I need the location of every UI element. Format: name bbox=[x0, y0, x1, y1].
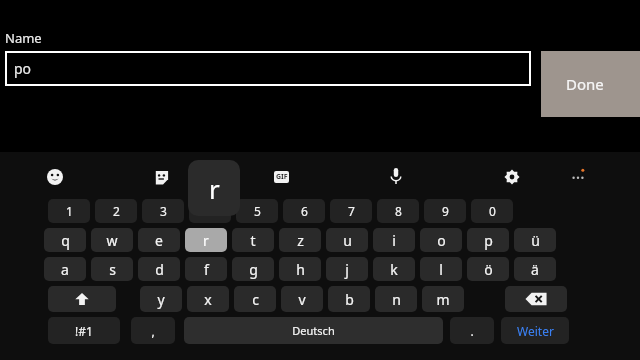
button[interactable]: w bbox=[91, 228, 133, 252]
button[interactable]: More options bbox=[565, 163, 591, 189]
staticText: GIF bbox=[276, 172, 288, 182]
staticText: l bbox=[439, 260, 443, 279]
button[interactable]: z bbox=[279, 228, 321, 252]
staticText: 0 bbox=[489, 203, 496, 219]
button[interactable]: g bbox=[232, 257, 274, 281]
button[interactable]: Weiter bbox=[501, 317, 569, 344]
button[interactable]: j bbox=[326, 257, 368, 281]
button[interactable]: p bbox=[467, 228, 509, 252]
staticText: z bbox=[297, 231, 304, 250]
button[interactable]: k bbox=[373, 257, 415, 281]
button[interactable]: Stickers bbox=[148, 164, 174, 190]
button[interactable]: , bbox=[131, 317, 175, 344]
staticText: c bbox=[252, 290, 259, 309]
button[interactable]: i bbox=[373, 228, 415, 252]
button[interactable]: h bbox=[279, 257, 321, 281]
button[interactable]: q bbox=[44, 228, 86, 252]
button[interactable]: ä bbox=[514, 257, 556, 281]
staticText: s bbox=[109, 260, 116, 279]
button[interactable]: y bbox=[140, 286, 182, 312]
staticText: 8 bbox=[395, 203, 402, 219]
button[interactable]: po bbox=[5, 51, 531, 86]
staticText: 5 bbox=[254, 203, 261, 219]
button[interactable]: m bbox=[422, 286, 464, 312]
staticText: e bbox=[155, 231, 163, 250]
button[interactable]: t bbox=[232, 228, 274, 252]
staticText: f bbox=[204, 260, 209, 279]
button[interactable]: l bbox=[420, 257, 462, 281]
button[interactable]: c bbox=[234, 286, 276, 312]
staticText: v bbox=[298, 290, 306, 309]
button[interactable]: !#1 bbox=[48, 317, 120, 344]
staticText: 9 bbox=[442, 203, 449, 219]
button[interactable]: d bbox=[138, 257, 180, 281]
button[interactable]: 2 bbox=[95, 199, 137, 223]
staticText: 1 bbox=[66, 203, 73, 219]
staticText: Deutsch bbox=[292, 323, 335, 338]
button[interactable]: 0 bbox=[471, 199, 513, 223]
button[interactable]: Shift bbox=[48, 286, 116, 312]
button[interactable]: u bbox=[326, 228, 368, 252]
staticText: 6 bbox=[301, 203, 308, 219]
button[interactable]: 4 bbox=[189, 199, 231, 223]
staticText: r bbox=[209, 171, 220, 206]
button[interactable]: Emoji bbox=[42, 164, 68, 190]
button[interactable]: r bbox=[185, 228, 227, 252]
staticText: i bbox=[392, 231, 396, 250]
button[interactable]: . bbox=[450, 317, 494, 344]
button[interactable]: 3 bbox=[142, 199, 184, 223]
staticText: 4 bbox=[207, 203, 214, 219]
button[interactable]: x bbox=[187, 286, 229, 312]
staticText: n bbox=[392, 290, 401, 309]
staticText: Done bbox=[566, 74, 604, 94]
staticText: q bbox=[61, 231, 70, 250]
staticText: Name bbox=[5, 29, 42, 47]
button[interactable]: ü bbox=[514, 228, 556, 252]
staticText: j bbox=[345, 260, 349, 279]
button[interactable]: GIF bbox=[268, 164, 294, 190]
button[interactable]: ö bbox=[467, 257, 509, 281]
button[interactable]: v bbox=[281, 286, 323, 312]
staticText: p bbox=[484, 231, 493, 250]
staticText: t bbox=[250, 231, 256, 250]
staticText: m bbox=[436, 290, 450, 309]
staticText: ö bbox=[484, 260, 493, 279]
staticText: !#1 bbox=[75, 323, 93, 339]
staticText: po bbox=[14, 59, 32, 78]
button[interactable]: b bbox=[328, 286, 370, 312]
button[interactable]: Backspace bbox=[505, 286, 567, 312]
staticText: g bbox=[249, 260, 258, 279]
button[interactable]: r bbox=[188, 160, 240, 216]
staticText: 7 bbox=[348, 203, 355, 219]
staticText: o bbox=[437, 231, 446, 250]
staticText: a bbox=[61, 260, 69, 279]
button[interactable]: e bbox=[138, 228, 180, 252]
button[interactable]: n bbox=[375, 286, 417, 312]
button[interactable]: o bbox=[420, 228, 462, 252]
staticText: 3 bbox=[160, 203, 167, 219]
staticText: d bbox=[155, 260, 164, 279]
staticText: ä bbox=[531, 260, 539, 279]
button[interactable]: 5 bbox=[236, 199, 278, 223]
staticText: u bbox=[343, 231, 352, 250]
button[interactable]: Deutsch bbox=[184, 317, 443, 344]
staticText: 2 bbox=[113, 203, 120, 219]
button[interactable]: a bbox=[44, 257, 86, 281]
button[interactable]: Voice input bbox=[383, 163, 409, 189]
button[interactable]: 7 bbox=[330, 199, 372, 223]
button[interactable]: Done bbox=[541, 51, 640, 117]
staticText: x bbox=[204, 290, 212, 309]
button[interactable]: f bbox=[185, 257, 227, 281]
staticText: ü bbox=[531, 231, 540, 250]
staticText: . bbox=[470, 323, 474, 339]
staticText: k bbox=[390, 260, 398, 279]
staticText: w bbox=[106, 231, 118, 250]
staticText: b bbox=[345, 290, 354, 309]
button[interactable]: Settings bbox=[499, 164, 525, 190]
button[interactable]: 1 bbox=[48, 199, 90, 223]
button[interactable]: 8 bbox=[377, 199, 419, 223]
button[interactable]: 9 bbox=[424, 199, 466, 223]
button[interactable]: 6 bbox=[283, 199, 325, 223]
button[interactable]: s bbox=[91, 257, 133, 281]
staticText: h bbox=[296, 260, 305, 279]
